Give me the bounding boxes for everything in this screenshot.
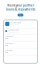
staticText: 0.00 bbox=[5, 38, 8, 39]
staticText: Amount due bbox=[5, 36, 13, 37]
staticText: 0.00 bbox=[5, 45, 8, 46]
staticText: Amount due bbox=[5, 43, 13, 44]
button[interactable]: Amount due bbox=[3, 48, 37, 55]
button[interactable]: Amount due bbox=[3, 41, 37, 48]
button[interactable]: Pay bbox=[18, 14, 23, 16]
staticText: Partner name bbox=[11, 22, 21, 24]
button[interactable]: Amount due bbox=[3, 34, 37, 41]
button[interactable]: Loan account bbox=[3, 28, 37, 34]
staticText: Amount due bbox=[5, 50, 13, 51]
staticText: repayment bbox=[9, 31, 17, 33]
staticText: loans & repayments bbox=[6, 8, 35, 11]
staticText: Pay bbox=[19, 14, 22, 16]
staticText: Thank your partner bbox=[7, 4, 34, 7]
staticText: 0.00 bbox=[5, 52, 8, 53]
staticText: reference bbox=[11, 24, 19, 26]
staticText: Loan account bbox=[9, 29, 19, 31]
